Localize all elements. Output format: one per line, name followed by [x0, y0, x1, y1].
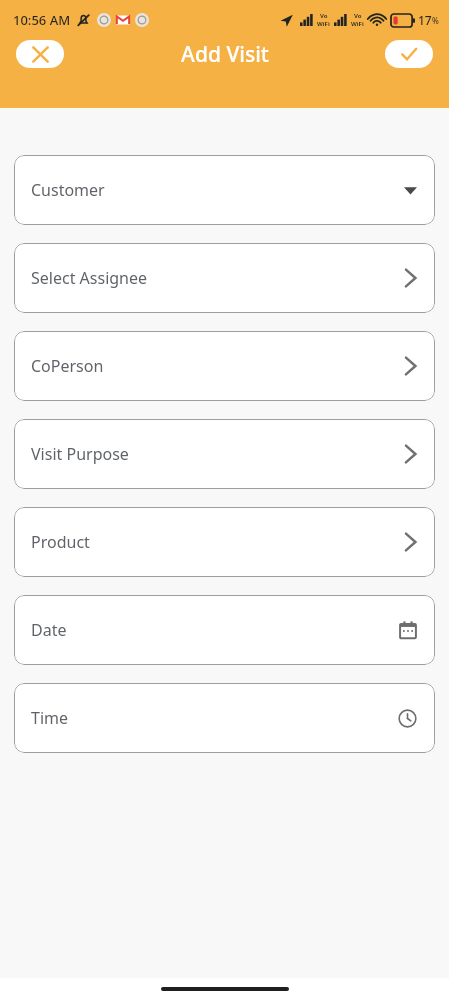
- button[interactable]: Time: [14, 683, 435, 753]
- button[interactable]: Customer: [14, 155, 435, 225]
- staticText: Select Assignee: [31, 267, 148, 289]
- staticText: Product: [31, 531, 90, 553]
- staticText: Visit Purpose: [31, 443, 129, 465]
- staticText: Vo: [320, 12, 328, 20]
- button[interactable]: CoPerson: [14, 331, 435, 401]
- staticText: %: [432, 15, 439, 26]
- staticText: 10:56 AM: [13, 11, 71, 29]
- staticText: Date: [31, 619, 67, 641]
- staticText: Add Visit: [181, 40, 269, 68]
- button[interactable]: Close: [16, 40, 64, 68]
- button[interactable]: Select Assignee: [14, 243, 435, 313]
- staticText: WiFi: [317, 20, 330, 28]
- button[interactable]: Visit Purpose: [14, 419, 435, 489]
- staticText: CoPerson: [31, 355, 104, 377]
- staticText: Vo: [354, 12, 362, 20]
- button[interactable]: Save: [385, 40, 433, 68]
- staticText: 17: [418, 12, 432, 28]
- button[interactable]: Date: [14, 595, 435, 665]
- staticText: Time: [31, 707, 69, 729]
- button[interactable]: Product: [14, 507, 435, 577]
- staticText: Customer: [31, 179, 105, 201]
- staticText: WiFi: [351, 20, 364, 28]
